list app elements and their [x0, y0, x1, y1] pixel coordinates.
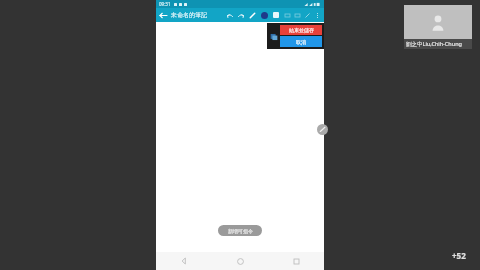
- button[interactable]: Tool 2: [292, 10, 302, 20]
- button[interactable]: Eraser: [270, 9, 282, 21]
- staticText: 未命名的筆記: [171, 11, 207, 19]
- button[interactable]: 新增可指令: [218, 225, 262, 236]
- button[interactable]: 劉之中Liu,Chih-Chung: [404, 5, 472, 49]
- button[interactable]: Overflow: [312, 10, 322, 20]
- staticText: +52: [452, 250, 466, 261]
- button[interactable]: 結束並儲存: [280, 25, 322, 35]
- button[interactable]: Back: [158, 10, 169, 21]
- button[interactable]: App icon: [269, 32, 278, 41]
- button[interactable]: Handle: [317, 124, 328, 135]
- button[interactable]: Home: [212, 252, 268, 270]
- staticText: 結束並儲存: [289, 27, 314, 33]
- button[interactable]: Redo: [235, 10, 246, 21]
- button[interactable]: Undo: [224, 10, 235, 21]
- button[interactable]: Recents: [268, 252, 324, 270]
- staticText: 劉之中Liu,Chih-Chung: [406, 40, 462, 48]
- button[interactable]: 取消: [280, 36, 322, 47]
- button[interactable]: Color: [258, 9, 270, 21]
- button[interactable]: Pen: [246, 9, 258, 21]
- staticText: 新增可指令: [228, 228, 253, 234]
- staticText: 取消: [296, 39, 306, 45]
- staticText: 09:31: [159, 1, 171, 7]
- button[interactable]: 未命名的筆記: [171, 11, 211, 20]
- button[interactable]: More: [302, 10, 312, 20]
- button[interactable]: Tool 1: [282, 10, 292, 20]
- button[interactable]: Back: [156, 252, 212, 270]
